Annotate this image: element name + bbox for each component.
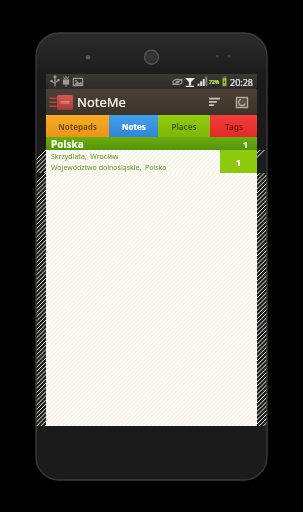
button[interactable]: Skrzydlata, Wrocław <box>46 150 257 173</box>
staticText: Województwo dolnośląskie, Polska <box>51 163 167 173</box>
staticText: Places <box>171 121 197 132</box>
button[interactable]: Tags <box>210 115 257 137</box>
button[interactable]: Notepads <box>46 115 109 137</box>
staticText: Notepads <box>58 121 97 132</box>
button[interactable]: Sort <box>201 89 227 115</box>
button[interactable]: Polska <box>46 137 257 150</box>
staticText: 20:28 <box>230 76 254 88</box>
staticText: Tags <box>225 121 243 132</box>
button[interactable]: Switch view <box>229 89 255 115</box>
staticText: Polska <box>51 137 84 150</box>
button[interactable]: Notes <box>109 115 158 137</box>
staticText: NoteMe <box>77 93 126 111</box>
button[interactable]: Places <box>158 115 210 137</box>
staticText: 72% <box>209 79 220 86</box>
button[interactable]: Open navigation drawer <box>48 89 57 115</box>
staticText: 1 <box>243 138 249 150</box>
staticText: Notes <box>122 121 146 132</box>
staticText: Skrzydlata, Wrocław <box>51 152 119 162</box>
staticText: 1 <box>236 156 242 168</box>
